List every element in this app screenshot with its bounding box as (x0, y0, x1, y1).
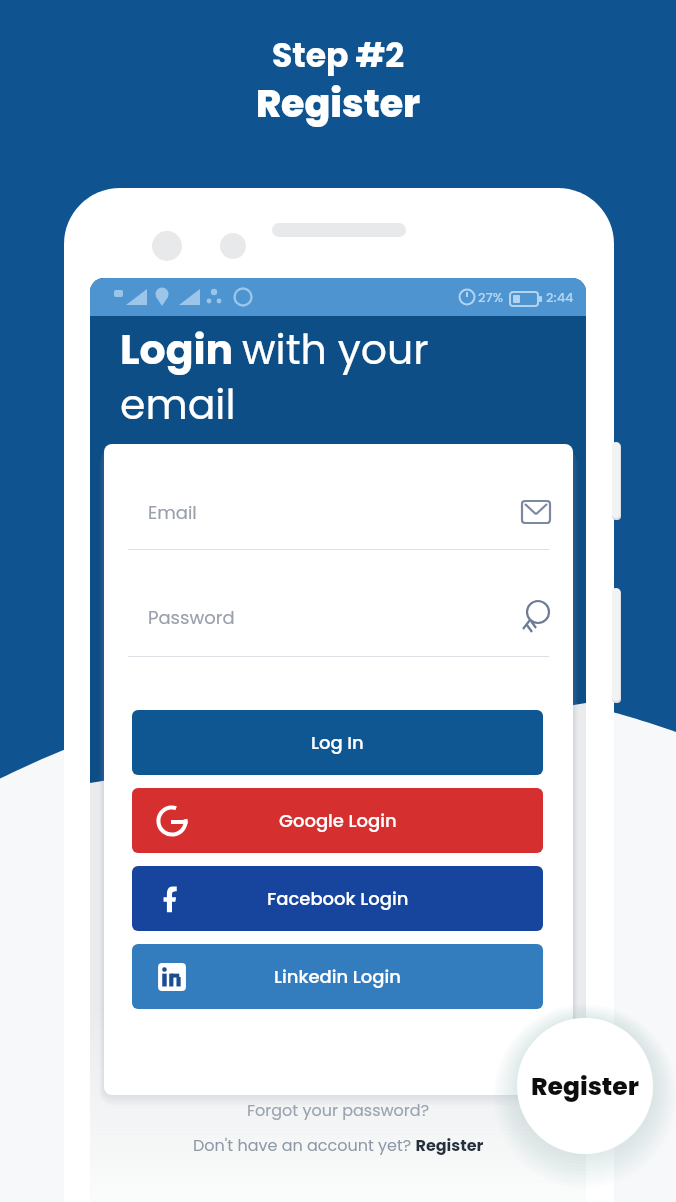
staticText: Password (148, 605, 235, 630)
staticText: Log In (311, 730, 364, 755)
staticText: Linkedin Login (274, 964, 401, 989)
staticText: Register (531, 1069, 639, 1104)
button[interactable]: Don't have an account yet? Register (193, 1134, 484, 1156)
staticText: Step #2 (272, 32, 405, 78)
staticText: Register (256, 77, 421, 130)
button[interactable]: Email (148, 486, 550, 538)
button[interactable]: Linkedin Login (132, 944, 543, 1009)
button[interactable]: Facebook Login (132, 866, 543, 931)
staticText: Email (148, 500, 197, 525)
staticText: 2:44 (546, 288, 574, 306)
staticText: Login with your email (120, 321, 440, 434)
other: Password (518, 600, 550, 634)
button[interactable]: Google Login (132, 788, 543, 853)
other: Email (522, 501, 550, 523)
button[interactable]: Log In (132, 710, 543, 775)
button[interactable]: Forgot your password? (247, 1099, 430, 1121)
staticText: 27% (478, 288, 504, 306)
staticText: Facebook Login (267, 886, 409, 911)
button[interactable]: Password (148, 591, 550, 643)
button[interactable]: Register (517, 1018, 653, 1154)
staticText: Google Login (279, 808, 397, 833)
